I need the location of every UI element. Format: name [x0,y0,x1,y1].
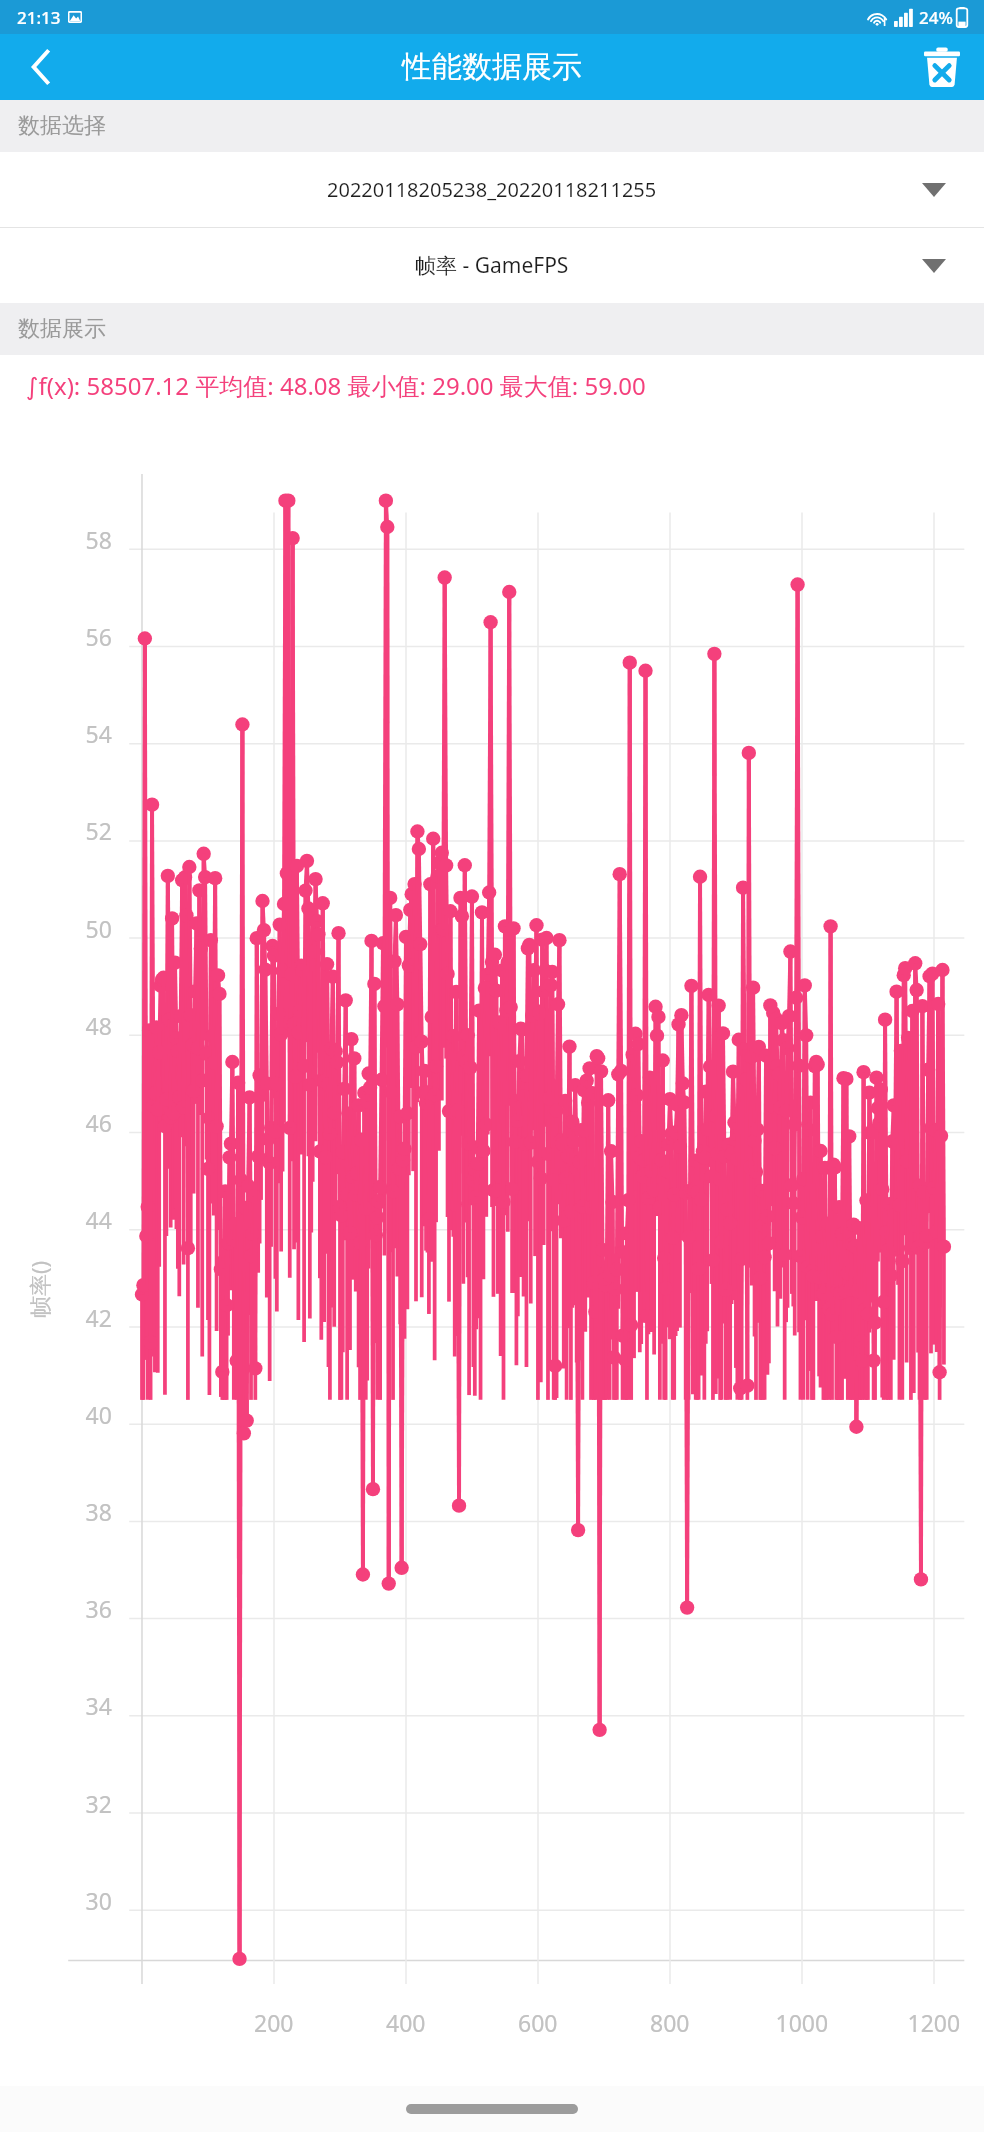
staticText: 性能数据展示 [402,48,582,86]
staticText: 帧率() [24,1260,54,1318]
button[interactable]: 帧率 - GameFPS [0,228,984,303]
staticText: ∫f(x): 58507.12 平均值: 48.08 最小值: 29.00 最大… [26,369,646,402]
staticText: 20220118205238_20220118211255 [327,176,657,203]
staticText: 数据选择 [18,112,106,140]
staticText: 21:13 [17,6,61,29]
button[interactable]: Back [8,35,72,99]
staticText: 帧率 - GameFPS [415,251,569,280]
button[interactable]: Delete [910,35,974,99]
staticText: 数据展示 [18,315,106,343]
staticText: 24% [919,6,953,29]
button[interactable]: 20220118205238_20220118211255 [0,152,984,227]
